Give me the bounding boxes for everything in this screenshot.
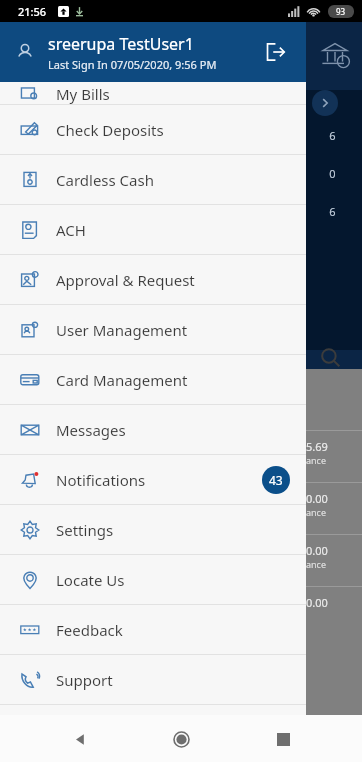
button[interactable]: Home <box>159 717 203 761</box>
button[interactable]: Feedback <box>0 605 306 654</box>
staticText: Feedback <box>56 620 290 640</box>
staticText: Notifications <box>56 470 262 490</box>
button[interactable]: Cardless Cash <box>0 155 306 204</box>
staticText: 0.00 <box>306 491 328 506</box>
staticText: User Management <box>56 320 290 340</box>
button[interactable]: User Management <box>0 305 306 354</box>
staticText: 0.00 <box>306 595 328 610</box>
staticText: sreerupa TestUser1 <box>48 33 194 55</box>
button[interactable]: Approval & Request <box>0 255 306 304</box>
staticText: Last Sign In 07/05/2020, 9:56 PM <box>48 57 217 72</box>
button[interactable]: My Bills <box>0 82 306 104</box>
button[interactable]: Card Management <box>0 355 306 404</box>
staticText: Support <box>56 670 290 690</box>
button[interactable]: Recents <box>261 717 305 761</box>
staticText: 6 <box>329 204 336 219</box>
staticText: Check Deposits <box>56 120 290 140</box>
staticText: 6 <box>329 128 336 143</box>
staticText: Approval & Request <box>56 270 290 290</box>
button[interactable]: Messages <box>0 405 306 454</box>
staticText: ance <box>306 506 327 518</box>
button[interactable]: Notifications <box>0 455 306 504</box>
staticText: 5.69 <box>306 439 328 454</box>
staticText: Locate Us <box>56 570 290 590</box>
staticText: My Bills <box>56 84 110 104</box>
staticText: 43 <box>269 472 283 488</box>
staticText: 21:56 <box>18 4 47 19</box>
button[interactable]: Locate Us <box>0 555 306 604</box>
staticText: ance <box>306 558 327 570</box>
staticText: 93 <box>336 6 346 17</box>
staticText: Messages <box>56 420 290 440</box>
button[interactable]: Sign out <box>258 35 292 69</box>
staticText: Card Management <box>56 370 290 390</box>
button[interactable]: sreerupa TestUser1 <box>0 22 306 82</box>
button[interactable]: Settings <box>0 505 306 554</box>
button[interactable]: Check Deposits <box>0 105 306 154</box>
staticText: ACH <box>56 220 290 240</box>
button[interactable]: Support <box>0 655 306 704</box>
staticText: 0 <box>329 166 336 181</box>
staticText: ance <box>306 454 327 466</box>
button[interactable]: ACH <box>0 205 306 254</box>
staticText: 0.00 <box>306 543 328 558</box>
button[interactable]: Back <box>58 717 102 761</box>
button[interactable]: Next <box>312 90 338 116</box>
staticText: Cardless Cash <box>56 170 290 190</box>
staticText: Settings <box>56 520 290 540</box>
